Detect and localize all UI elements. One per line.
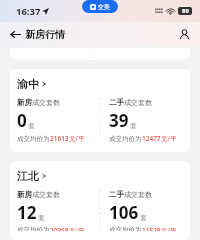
button[interactable]: Back bbox=[6, 25, 25, 44]
staticText: 成交套数 bbox=[124, 98, 152, 107]
staticText: 元/平 bbox=[161, 226, 177, 231]
staticText: 成交套数 bbox=[124, 190, 152, 199]
staticText: 套 bbox=[28, 122, 35, 130]
staticText: 新房 bbox=[17, 98, 32, 107]
staticText: 二手 bbox=[109, 98, 124, 107]
staticText: 成交均价为 bbox=[109, 226, 142, 231]
staticText: 39 bbox=[109, 109, 129, 132]
staticText: 成交套数 bbox=[32, 190, 60, 199]
staticText: 16:37 bbox=[16, 5, 41, 18]
staticText: 成交套数 bbox=[32, 98, 60, 107]
staticText: 套 bbox=[38, 214, 45, 222]
staticText: 21613 bbox=[50, 134, 69, 143]
staticText: 元/平 bbox=[161, 134, 177, 143]
staticText: 元/平 bbox=[69, 226, 85, 231]
staticText: 新房行情 bbox=[25, 28, 65, 41]
staticText: 套 bbox=[140, 214, 147, 222]
staticText: 交美 bbox=[98, 3, 110, 11]
button[interactable]: 江北 bbox=[10, 161, 190, 240]
staticText: 12 bbox=[17, 201, 37, 224]
staticText: 89 bbox=[182, 7, 189, 15]
staticText: 二手 bbox=[109, 190, 124, 199]
staticText: 元/平 bbox=[69, 134, 85, 143]
staticText: 套 bbox=[130, 122, 137, 130]
staticText: 0 bbox=[17, 109, 27, 132]
staticText: 成交均价为 bbox=[17, 226, 50, 231]
staticText: 成交均价为 bbox=[109, 135, 142, 143]
staticText: 江北 bbox=[17, 169, 39, 183]
button[interactable]: 渝中 bbox=[10, 69, 190, 152]
staticText: 106 bbox=[109, 201, 139, 224]
staticText: 新房 bbox=[17, 190, 32, 199]
staticText: 11529 bbox=[142, 226, 161, 231]
staticText: 渝中 bbox=[17, 77, 39, 91]
staticText: 成交均价为 bbox=[17, 135, 50, 143]
staticText: 12477 bbox=[142, 134, 161, 143]
button[interactable]: Profile bbox=[176, 26, 192, 42]
staticText: 20358 bbox=[50, 226, 69, 231]
